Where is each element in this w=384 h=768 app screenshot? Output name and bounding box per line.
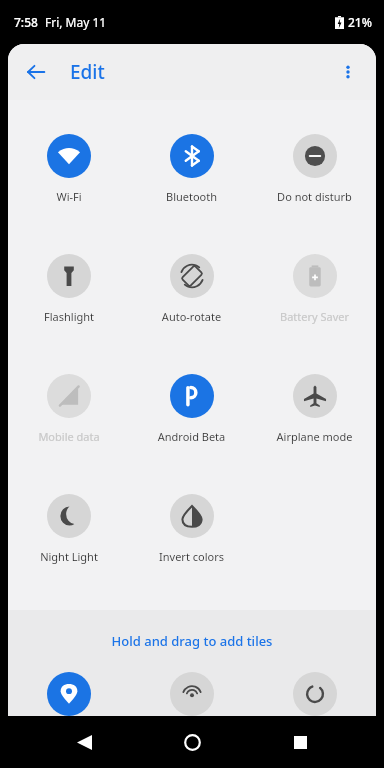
button[interactable]: Auto-rotate [130,238,253,358]
button[interactable]: Night Light [8,478,130,598]
staticText: Airplane mode [255,429,374,444]
button[interactable]: Location [47,672,91,716]
button[interactable]: Battery Saver [253,238,376,358]
staticText: Bluetooth [132,189,251,204]
staticText: 7:58 [14,14,38,30]
staticText: Auto-rotate [132,309,251,324]
button[interactable]: Wi-Fi [8,118,130,238]
button[interactable]: Do not disturb [253,118,376,238]
staticText: Flashlight [10,309,128,324]
staticText: Invert colors [132,549,251,564]
button[interactable]: Flashlight [8,238,130,358]
staticText: Wi-Fi [10,189,128,204]
staticText: Do not disturb [255,189,374,204]
staticText: Battery Saver [255,309,374,324]
button[interactable]: Hotspot [170,672,214,716]
button[interactable]: Mobile data [8,358,130,478]
staticText: 21% [348,14,372,30]
button[interactable]: Bluetooth [130,118,253,238]
button[interactable]: Back [14,50,58,94]
button[interactable]: Invert colors [130,478,253,598]
staticText: Fri, May 11 [45,14,107,30]
button[interactable]: Home [168,718,216,766]
staticText: Android Beta Program.. [132,429,251,444]
button[interactable]: Android Beta Program.. [130,358,253,478]
button[interactable]: More options [326,50,370,94]
button[interactable]: Airplane mode [253,358,376,478]
button[interactable]: Data Saver [293,672,337,716]
button[interactable]: Back [60,718,108,766]
staticText: Edit [70,59,105,85]
button[interactable]: Recents [276,718,324,766]
staticText: Mobile data [10,429,128,444]
staticText: Night Light [10,549,128,564]
staticText: Hold and drag to add tiles [8,632,376,650]
